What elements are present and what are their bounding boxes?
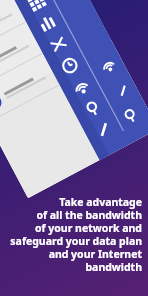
button[interactable]: App screenshot preview [0, 0, 148, 198]
button[interactable]: Take advantage of all the bandwidth of y… [10, 195, 142, 274]
staticText: Take advantage of all the bandwidth of y… [10, 195, 142, 274]
